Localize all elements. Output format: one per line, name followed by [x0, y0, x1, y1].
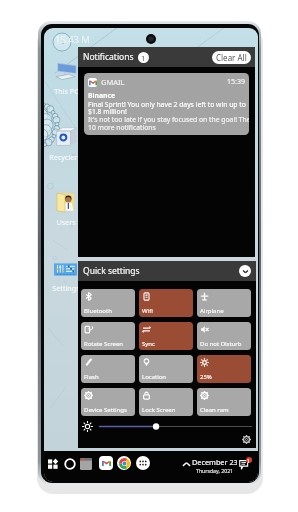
button[interactable]: Chrome	[117, 456, 131, 470]
button[interactable]: Search	[64, 458, 76, 470]
staticText: 10 more notifications	[88, 123, 156, 132]
button[interactable]: Task view	[80, 458, 92, 470]
button[interactable]: Airplane	[197, 289, 251, 317]
button[interactable]: Device Settings	[81, 388, 135, 416]
staticText: Users	[56, 217, 76, 227]
staticText: Settings	[52, 283, 80, 293]
button[interactable]: Brightness	[82, 421, 93, 432]
button[interactable]: Notifications	[239, 458, 251, 470]
staticText: Airplane	[200, 307, 224, 315]
button[interactable]: Clean ram	[197, 388, 251, 416]
staticText: 15:39	[227, 77, 245, 87]
staticText: This PC	[54, 86, 79, 96]
staticText: 15:43 M	[55, 33, 90, 46]
staticText: Wifi	[142, 307, 153, 315]
staticText: $1.8 million!	[88, 107, 127, 116]
staticText: 1	[141, 53, 146, 63]
button[interactable]: Sync	[139, 322, 193, 350]
staticText: Recycler b	[49, 152, 84, 162]
staticText: 25%	[200, 373, 212, 381]
button[interactable]: Show hidden icons	[182, 460, 191, 469]
staticText: Clear All	[216, 52, 247, 63]
staticText: Device Settings	[84, 406, 127, 414]
button[interactable]	[49, 125, 82, 161]
staticText: Bluetooth	[84, 307, 112, 315]
staticText: 1	[247, 457, 250, 464]
button[interactable]: All apps	[136, 456, 150, 470]
staticText: December 23	[192, 457, 237, 467]
staticText: Location	[142, 373, 167, 381]
button[interactable]: Start	[48, 459, 58, 469]
button[interactable]: Rotate Screen	[81, 322, 135, 350]
staticText: Notifications	[83, 51, 134, 63]
staticText: It's not too late if you stay focused on…	[88, 115, 249, 124]
staticText: Binance	[88, 91, 116, 100]
button[interactable]: Do not Disturb	[197, 322, 251, 350]
staticText: Flash	[84, 373, 99, 381]
button[interactable]: Clear All	[212, 51, 251, 64]
staticText: GMAIL	[101, 77, 125, 87]
button[interactable]: Flash	[81, 355, 135, 383]
button[interactable]: Brightness slider	[99, 421, 252, 432]
button[interactable]: 25%	[197, 355, 251, 383]
button[interactable]: Collapse quick settings	[239, 265, 251, 277]
button[interactable]: Lock Screen	[139, 388, 193, 416]
button[interactable]: GMAIL	[84, 73, 249, 135]
button[interactable]: Settings	[242, 435, 251, 444]
staticText: Quick settings	[83, 265, 140, 277]
staticText: Do not Disturb	[200, 340, 242, 348]
staticText: Sync	[142, 340, 155, 348]
button[interactable]	[49, 58, 82, 95]
button[interactable]: Gmail	[99, 456, 113, 470]
staticText: Lock Screen	[142, 406, 176, 414]
staticText: Rotate Screen	[84, 340, 124, 348]
button[interactable]	[49, 190, 82, 226]
button[interactable]: Bluetooth	[81, 289, 135, 317]
staticText: Final Sprint! You only have 2 days left …	[88, 100, 246, 109]
staticText: Thursday, 2021	[196, 467, 234, 474]
button[interactable]: Wifi	[139, 289, 193, 317]
button[interactable]: Location	[139, 355, 193, 383]
button[interactable]	[49, 260, 82, 292]
staticText: Clean ram	[200, 406, 229, 414]
